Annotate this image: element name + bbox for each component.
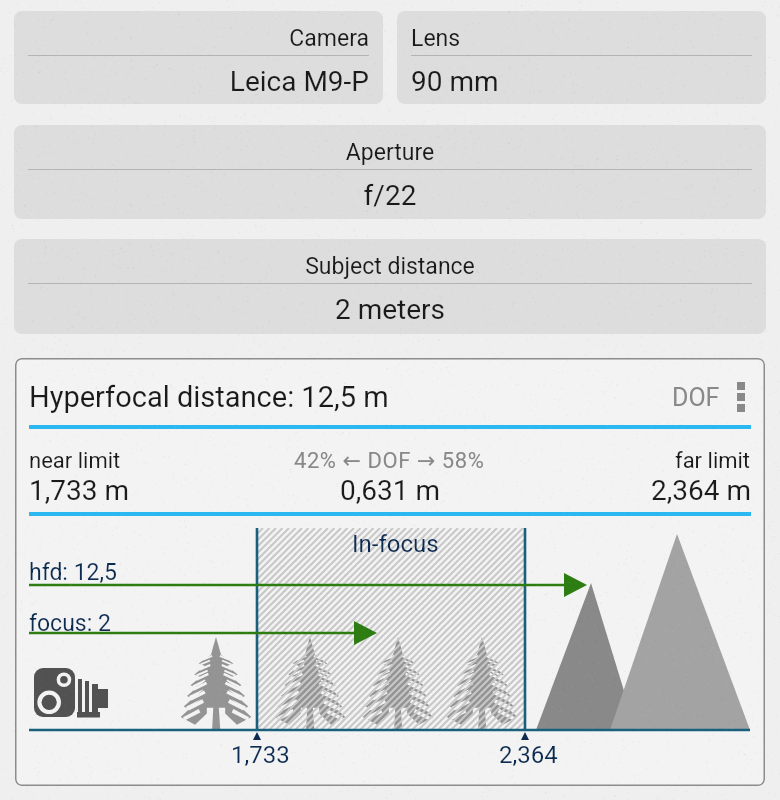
staticText: 42% ← DOF → 58% [294, 448, 485, 474]
staticText: 2,364 [499, 741, 558, 769]
button[interactable]: Subject distance [14, 239, 766, 334]
staticText: 2 meters [28, 293, 752, 326]
staticText: 2,364 m [651, 474, 751, 507]
staticText: near limit [29, 448, 121, 474]
button[interactable]: Camera [14, 11, 383, 104]
staticText: DOF [672, 383, 720, 412]
staticText: Leica M9-P [28, 65, 369, 98]
button[interactable]: More options [731, 377, 751, 417]
staticText: focus: 2 [29, 610, 111, 637]
staticText: Hyperfocal distance: 12,5 m [29, 380, 389, 414]
staticText: Subject distance [28, 253, 752, 280]
staticText: far limit [675, 448, 751, 474]
staticText: 1,733 [231, 741, 290, 769]
staticText: In-focus [352, 530, 439, 558]
button[interactable]: Lens [397, 11, 766, 104]
staticText: Lens [411, 25, 752, 52]
button[interactable]: Aperture [14, 125, 766, 219]
staticText: 90 mm [411, 65, 752, 98]
staticText: 0,631 m [340, 474, 440, 507]
staticText: f/22 [28, 179, 752, 212]
staticText: hfd: 12,5 [29, 559, 117, 586]
staticText: Camera [28, 25, 369, 52]
staticText: 1,733 m [29, 474, 129, 507]
staticText: Aperture [28, 139, 752, 166]
